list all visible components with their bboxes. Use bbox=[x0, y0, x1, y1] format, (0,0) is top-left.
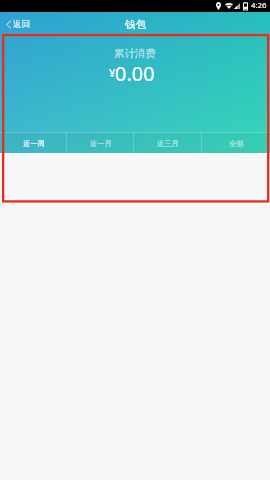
button[interactable]: 近一月 bbox=[67, 132, 134, 153]
staticText: 返回 bbox=[13, 19, 30, 30]
staticText: ¥ bbox=[109, 65, 116, 81]
button[interactable]: 全部 bbox=[202, 132, 270, 153]
staticText: 近一月 bbox=[90, 139, 112, 148]
button[interactable]: 近一周 bbox=[0, 132, 67, 153]
staticText: 钱包 bbox=[125, 18, 146, 31]
staticText: 近一周 bbox=[23, 139, 45, 148]
button[interactable]: 返回 bbox=[0, 16, 38, 33]
staticText: 0.00 bbox=[115, 60, 155, 87]
staticText: 近三月 bbox=[157, 139, 179, 148]
staticText: 累计消费 bbox=[114, 47, 156, 60]
staticText: 4:26 bbox=[251, 0, 267, 11]
button[interactable]: 近三月 bbox=[134, 132, 202, 153]
staticText: 全部 bbox=[229, 139, 244, 148]
